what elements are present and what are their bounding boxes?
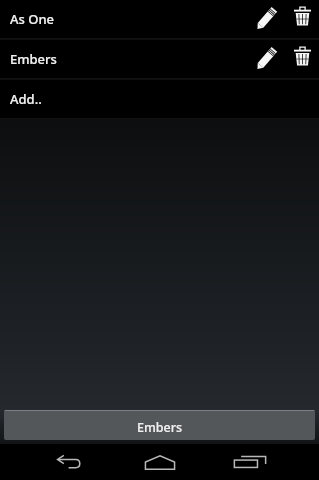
button[interactable]: Add..	[0, 80, 319, 118]
button[interactable]: Embers	[0, 40, 319, 78]
staticText: As One	[10, 10, 245, 28]
staticText: Embers	[137, 419, 183, 436]
button[interactable]: Delete	[288, 0, 317, 38]
staticText: Add..	[10, 90, 319, 108]
button[interactable]: Edit	[245, 40, 288, 78]
button[interactable]: Edit	[245, 0, 288, 38]
button[interactable]: As One	[0, 0, 319, 38]
staticText: Embers	[10, 50, 245, 68]
button[interactable]: Back	[25, 444, 115, 480]
button[interactable]: Home	[115, 444, 205, 480]
button[interactable]: Recent apps	[205, 444, 295, 480]
button[interactable]: Delete	[288, 40, 317, 78]
button[interactable]: Embers	[4, 410, 315, 440]
